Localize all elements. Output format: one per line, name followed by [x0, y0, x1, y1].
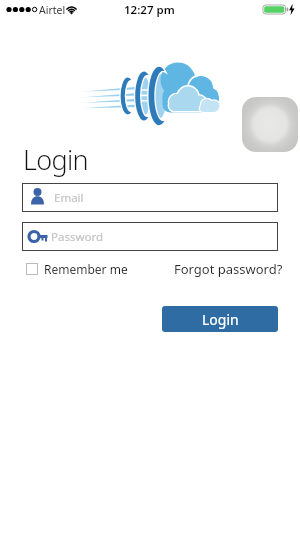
staticText: Password — [51, 229, 104, 245]
staticText: Login — [202, 310, 239, 329]
staticText: Email — [54, 190, 84, 206]
staticText: Login — [23, 141, 88, 178]
button[interactable]: Email — [22, 183, 278, 212]
button[interactable] — [242, 97, 298, 152]
staticText: Forgot password? — [174, 260, 283, 278]
button[interactable]: Forgot password? — [174, 260, 283, 278]
staticText: 12:27 pm — [124, 2, 175, 18]
staticText: Airtel — [39, 3, 66, 17]
button[interactable]: Password — [22, 222, 278, 251]
button[interactable]: Login — [162, 306, 278, 332]
button[interactable]: Remember me — [26, 261, 128, 277]
staticText: Remember me — [44, 261, 128, 277]
